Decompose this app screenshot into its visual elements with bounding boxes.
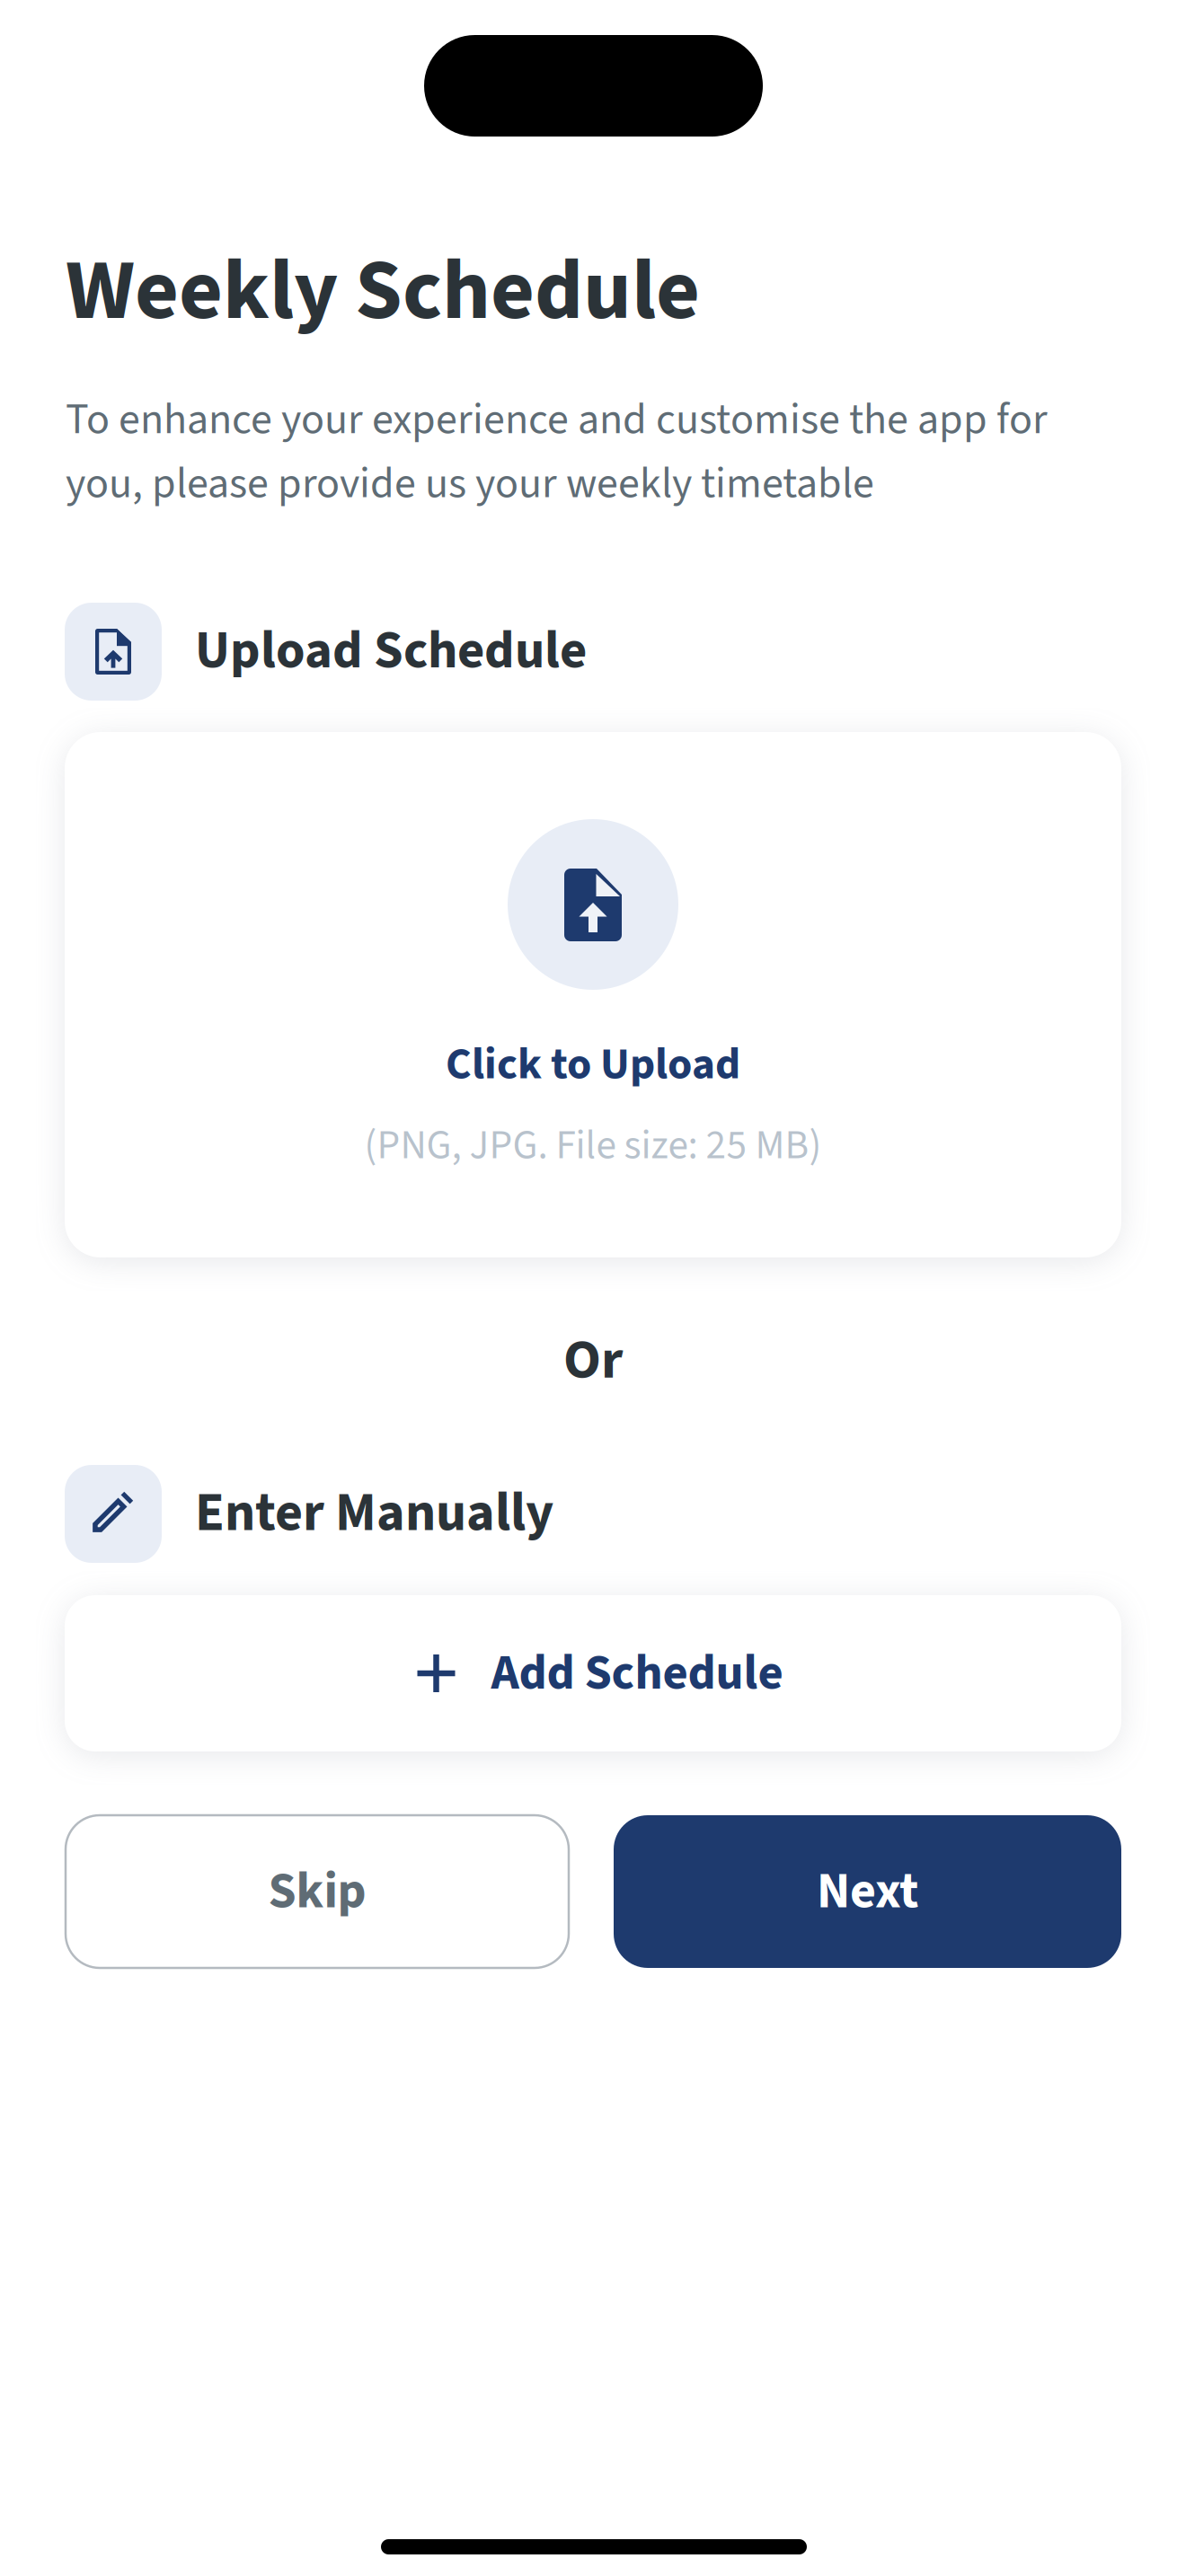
staticText: Upload Schedule: [195, 613, 587, 688]
staticText: To enhance your experience and customise…: [66, 389, 1048, 450]
staticText: Add Schedule: [491, 1638, 783, 1708]
button[interactable]: Next: [614, 1815, 1121, 1968]
staticText: Enter Manually: [195, 1475, 553, 1552]
staticText: (PNG, JPG. File size: 25 MB): [364, 1116, 822, 1174]
staticText: Weekly Schedule: [66, 231, 700, 352]
button[interactable]: Add Schedule: [65, 1595, 1121, 1751]
staticText: Skip: [268, 1856, 366, 1927]
staticText: Click to Upload: [446, 1033, 740, 1096]
staticText: Next: [817, 1856, 918, 1927]
staticText: Or: [563, 1321, 623, 1400]
staticText: you, please provide us your weekly timet…: [66, 453, 874, 514]
button[interactable]: Click to Upload: [65, 732, 1121, 1257]
button[interactable]: Skip: [66, 1815, 569, 1968]
